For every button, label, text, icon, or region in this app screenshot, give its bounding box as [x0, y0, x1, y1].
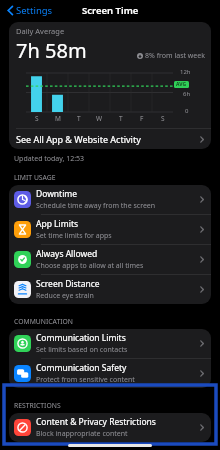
staticText: 0: [185, 107, 189, 115]
other: Open: [200, 136, 204, 143]
staticText: AVG: [176, 81, 187, 88]
staticText: 12h: [180, 68, 191, 76]
staticText: Set time limits for apps: [36, 231, 112, 241]
other: Open: [200, 256, 204, 263]
button[interactable]: Settings: [5, 2, 55, 19]
staticText: LIMIT USAGE: [14, 173, 56, 182]
button[interactable]: Always Allowed: [9, 245, 211, 274]
other: Open: [200, 424, 204, 431]
button[interactable]: App Limits: [9, 215, 211, 244]
other: Open: [200, 196, 204, 203]
staticText: 8% from last week: [145, 51, 205, 61]
staticText: Communication Limits: [36, 332, 126, 344]
staticText: Content & Privacy Restrictions: [36, 416, 156, 428]
staticText: See All App & Website Activity: [16, 133, 141, 145]
staticText: M: [55, 114, 61, 123]
button[interactable]: See All App & Website Activity: [9, 129, 211, 149]
staticText: S: [35, 114, 39, 123]
staticText: Block inappropriate content: [36, 429, 128, 439]
button[interactable]: Screen Distance: [9, 275, 211, 304]
staticText: Communication Safety: [36, 362, 127, 374]
staticText: Reduce eye strain: [36, 291, 94, 301]
other: Open: [200, 370, 204, 377]
staticText: Settings: [16, 4, 53, 17]
staticText: Downtime: [36, 188, 78, 200]
staticText: Screen Distance: [36, 278, 100, 290]
button[interactable]: Downtime: [9, 185, 211, 214]
staticText: T: [119, 114, 123, 123]
staticText: Set limits based on contacts: [36, 345, 128, 355]
staticText: RESTRICTIONS: [14, 401, 61, 410]
staticText: 6h: [183, 90, 191, 98]
staticText: Screen Time: [82, 4, 139, 17]
staticText: COMMUNICATION: [14, 317, 73, 326]
staticText: W: [96, 114, 103, 123]
staticText: Schedule time away from the screen: [36, 201, 156, 211]
other: Open: [200, 340, 204, 347]
staticText: Protect from sensitive content: [36, 375, 135, 385]
button[interactable]: Communication Limits: [9, 329, 211, 358]
staticText: S: [161, 114, 165, 123]
staticText: App Limits: [36, 218, 79, 230]
other: Open: [200, 226, 204, 233]
staticText: F: [140, 114, 144, 123]
other: Open: [200, 286, 204, 293]
staticText: T: [77, 114, 81, 123]
staticText: Choose apps to allow at all times: [36, 261, 144, 271]
button[interactable]: Communication Safety: [9, 359, 211, 388]
staticText: 7h 58m: [16, 37, 87, 64]
staticText: Always Allowed: [36, 248, 98, 260]
button[interactable]: Content & Privacy Restrictions: [9, 413, 211, 442]
staticText: Updated today, 12:53: [14, 154, 85, 164]
staticText: Daily Average: [16, 26, 65, 36]
